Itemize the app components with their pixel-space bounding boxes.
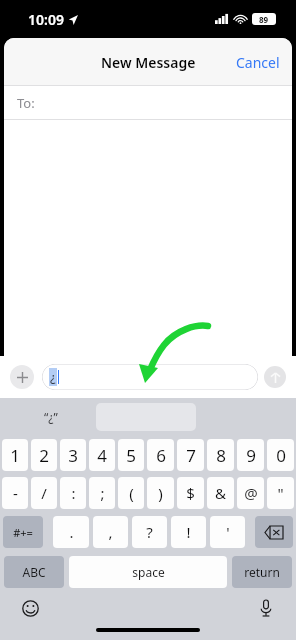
button[interactable]: 1 (2, 439, 28, 471)
button[interactable]: . (53, 516, 89, 548)
staticText: & (215, 483, 226, 503)
button[interactable]: @ (237, 477, 264, 509)
staticText: " (277, 483, 284, 503)
button[interactable]: space (69, 556, 227, 588)
button[interactable]: Dictation (254, 596, 278, 620)
staticText: 8 (216, 444, 226, 467)
staticText: ; (100, 483, 105, 503)
staticText: ! (186, 522, 191, 542)
button[interactable]: - (2, 477, 28, 509)
staticText: ( (129, 483, 134, 503)
staticText: 2 (39, 444, 49, 467)
staticText: To: (17, 94, 35, 112)
button[interactable]: ' (210, 516, 245, 548)
staticText: 6 (156, 444, 166, 467)
button[interactable]: Backspace (255, 516, 293, 548)
button[interactable]: 0 (267, 439, 294, 471)
staticText: “¿” (44, 409, 58, 425)
staticText: . (69, 522, 74, 542)
button[interactable]: Add attachment (10, 365, 34, 389)
staticText: : (71, 483, 76, 503)
staticText: return (244, 564, 280, 580)
button[interactable]: ? (132, 516, 167, 548)
staticText: , (108, 522, 113, 542)
staticText: ? (146, 522, 153, 542)
staticText: ¿ (50, 368, 56, 386)
staticText: $ (186, 483, 195, 503)
staticText: 9 (246, 444, 256, 467)
button[interactable]: 8 (207, 439, 234, 471)
button[interactable]: 9 (237, 439, 264, 471)
button[interactable]: 7 (177, 439, 204, 471)
button[interactable]: 3 (60, 439, 86, 471)
staticText: New Message (101, 53, 196, 72)
staticText: ABC (22, 564, 46, 580)
button[interactable]: ( (118, 477, 144, 509)
staticText: / (41, 483, 47, 503)
button[interactable]: ; (89, 477, 115, 509)
staticText: 10:09 (28, 10, 64, 29)
staticText: #+= (13, 525, 33, 540)
staticText: @ (244, 483, 258, 503)
button[interactable]: 6 (147, 439, 174, 471)
button[interactable]: / (31, 477, 57, 509)
staticText: - (13, 483, 18, 503)
staticText: 5 (126, 444, 136, 467)
button[interactable]: Send (264, 366, 286, 388)
button[interactable]: , (93, 516, 128, 548)
button[interactable]: " (267, 477, 294, 509)
button[interactable]: : (60, 477, 86, 509)
staticText: 3 (68, 444, 78, 467)
staticText: 0 (276, 444, 286, 467)
staticText: 7 (186, 444, 196, 467)
button[interactable]: 5 (118, 439, 144, 471)
button[interactable]: Emoji (18, 596, 42, 620)
button[interactable]: Cancel (224, 43, 292, 82)
staticText: space (132, 564, 165, 580)
button[interactable]: “¿” (6, 398, 96, 436)
button[interactable]: #+= (3, 516, 43, 548)
button[interactable]: 4 (89, 439, 115, 471)
staticText: 89 (259, 14, 269, 25)
button[interactable]: ¿ (42, 364, 258, 390)
staticText: ) (158, 483, 163, 503)
button[interactable]: & (207, 477, 234, 509)
staticText: 1 (10, 444, 20, 467)
button[interactable]: ) (147, 477, 174, 509)
button[interactable]: $ (177, 477, 204, 509)
staticText: Cancel (236, 53, 280, 72)
staticText: ' (226, 522, 230, 542)
button[interactable]: return (232, 556, 292, 588)
button[interactable]: ABC (4, 556, 64, 588)
button[interactable]: 2 (31, 439, 57, 471)
staticText: 4 (97, 444, 107, 467)
button[interactable]: ! (171, 516, 206, 548)
